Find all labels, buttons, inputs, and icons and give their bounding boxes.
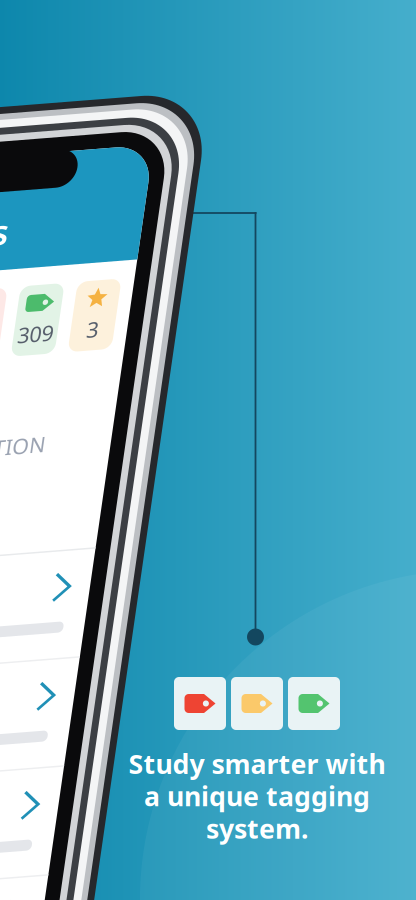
- staticText: Statistics: [0, 225, 27, 271]
- button[interactable]: [174, 677, 340, 730]
- staticText: system.: [206, 811, 308, 846]
- staticText: Study smarter with: [128, 746, 385, 781]
- staticText: 8 SEC PER QUESTION: [0, 452, 95, 480]
- staticText: a unique tagging: [144, 778, 370, 814]
- staticText: 309: [51, 340, 87, 368]
- staticText: 86 Correct: [0, 405, 35, 446]
- staticText: 51: [0, 340, 24, 368]
- staticText: 3: [120, 340, 132, 368]
